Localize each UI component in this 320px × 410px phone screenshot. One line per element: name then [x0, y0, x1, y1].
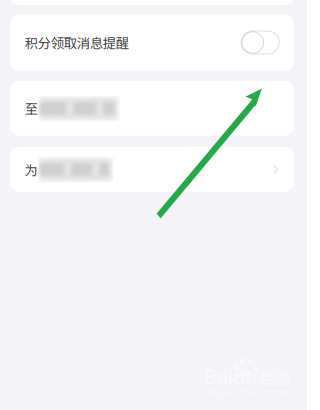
staticText: 至	[25, 99, 38, 118]
button[interactable]: 积分领取消息提醒	[10, 14, 293, 70]
button[interactable]: 至	[10, 81, 293, 136]
button[interactable]: 为	[10, 147, 293, 192]
staticText: 积分领取消息提醒	[25, 33, 129, 52]
staticText: 为	[25, 160, 38, 179]
